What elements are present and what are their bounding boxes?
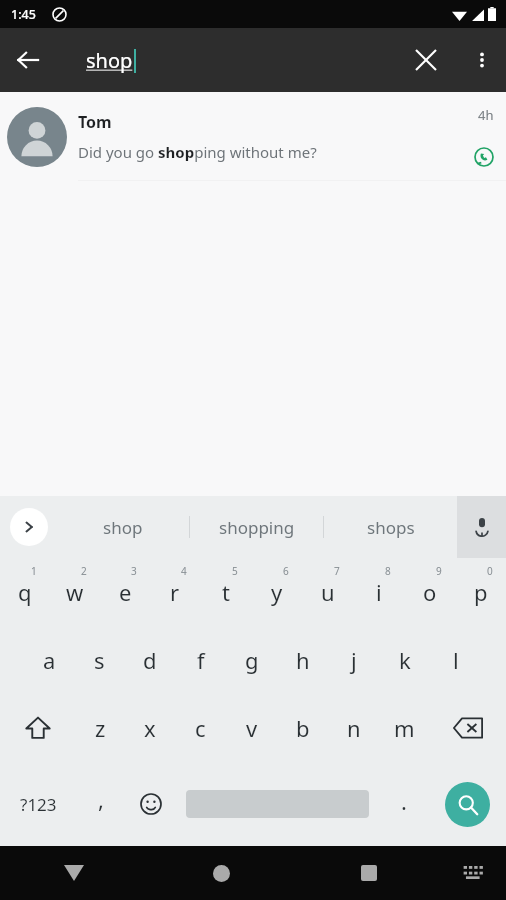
staticText: 8 [385, 564, 391, 578]
button[interactable]: h [277, 626, 328, 694]
button[interactable]: m [379, 694, 430, 762]
button[interactable]: q [0, 558, 50, 626]
staticText: . [401, 786, 407, 816]
staticText: 2 [81, 564, 87, 578]
staticText: Did you go shopping without me? [78, 142, 317, 162]
button[interactable]: , [76, 762, 126, 846]
button[interactable]: Hide keyboard [0, 846, 148, 900]
staticText: t [222, 577, 230, 607]
button[interactable]: c [175, 694, 226, 762]
button[interactable]: Expand suggestions [0, 496, 57, 558]
button[interactable]: p [455, 558, 506, 626]
button[interactable]: s [74, 626, 124, 694]
staticText: 3 [131, 564, 137, 578]
button[interactable]: Backspace [430, 694, 506, 762]
button[interactable]: z [75, 694, 125, 762]
staticText: a [43, 645, 56, 675]
button[interactable]: d [124, 626, 175, 694]
button[interactable]: Home [148, 846, 295, 900]
staticText: z [95, 713, 106, 743]
staticText: 6 [283, 564, 289, 578]
button[interactable]: shopping [190, 496, 323, 558]
button[interactable]: f [175, 626, 226, 694]
staticText: o [423, 577, 437, 607]
staticText: j [351, 645, 357, 675]
staticText: r [170, 577, 180, 607]
staticText: 1:45 [11, 6, 36, 23]
button[interactable]: j [328, 626, 379, 694]
staticText: k [399, 645, 411, 675]
button[interactable]: t [200, 558, 251, 626]
button[interactable]: e [100, 558, 150, 626]
staticText: 9 [436, 564, 442, 578]
button[interactable]: Voice input [457, 496, 506, 558]
staticText: d [143, 645, 157, 675]
button[interactable]: Back [0, 32, 56, 88]
staticText: s [94, 645, 105, 675]
staticText: i [376, 577, 382, 607]
staticText: h [296, 645, 310, 675]
button[interactable]: shop [57, 496, 189, 558]
button[interactable]: b [277, 694, 328, 762]
staticText: ?123 [20, 793, 57, 816]
button[interactable]: n [328, 694, 379, 762]
staticText: , [98, 784, 104, 814]
staticText: v [246, 713, 258, 743]
staticText: 0 [487, 564, 493, 578]
staticText: e [119, 577, 132, 607]
staticText: m [394, 713, 415, 743]
button[interactable]: More options [458, 36, 506, 84]
staticText: 5 [232, 564, 238, 578]
staticText: f [197, 645, 205, 675]
staticText: shop [103, 516, 143, 539]
button[interactable]: Switch keyboard [442, 846, 506, 900]
button[interactable]: g [226, 626, 277, 694]
button[interactable]: Search [429, 762, 506, 846]
button[interactable]: u [302, 558, 353, 626]
button[interactable]: . [379, 762, 429, 846]
staticText: u [321, 577, 335, 607]
staticText: b [296, 713, 310, 743]
button[interactable]: Shift [0, 694, 75, 762]
button[interactable]: y [251, 558, 302, 626]
staticText: x [144, 713, 156, 743]
button[interactable]: w [50, 558, 100, 626]
staticText: 4h [478, 106, 494, 124]
staticText: 7 [334, 564, 340, 578]
button[interactable]: Recent apps [295, 846, 442, 900]
button[interactable]: shops [324, 496, 457, 558]
staticText: shop [86, 47, 133, 74]
button[interactable]: k [379, 626, 430, 694]
staticText: 1 [31, 564, 37, 578]
staticText: g [245, 645, 259, 675]
button[interactable]: o [404, 558, 455, 626]
button[interactable]: Clear query [402, 36, 450, 84]
staticText: 4 [181, 564, 187, 578]
staticText: w [66, 577, 84, 607]
staticText: shopping [219, 516, 295, 539]
button[interactable]: ?123 [0, 762, 76, 846]
staticText: n [347, 713, 361, 743]
button[interactable]: a [24, 626, 74, 694]
staticText: p [474, 577, 488, 607]
staticText: c [195, 713, 206, 743]
button[interactable]: Tom [0, 92, 506, 181]
staticText: y [271, 577, 283, 607]
button[interactable]: Space [176, 762, 379, 846]
button[interactable]: x [125, 694, 175, 762]
staticText: q [18, 577, 32, 607]
button[interactable]: l [430, 626, 481, 694]
button[interactable]: r [150, 558, 200, 626]
button[interactable]: v [226, 694, 277, 762]
button[interactable]: Emoji [126, 762, 176, 846]
staticText: l [453, 645, 459, 675]
staticText: Tom [78, 111, 112, 133]
staticText: shops [367, 516, 415, 539]
button[interactable]: i [353, 558, 404, 626]
